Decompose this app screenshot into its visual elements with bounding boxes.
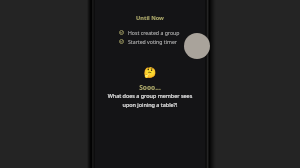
staticText: Sooo... (95, 83, 205, 92)
button[interactable]: Started voting timer (119, 38, 177, 45)
staticText: Until Now (95, 14, 205, 22)
button[interactable]: Member avatar (184, 33, 210, 59)
button[interactable]: Host created a group (119, 29, 180, 36)
staticText: Host created a group (128, 29, 180, 36)
staticText: Started voting timer (128, 38, 177, 45)
staticText: What does a group member sees upon joini… (95, 92, 205, 108)
staticText: 🤔 (95, 66, 205, 78)
